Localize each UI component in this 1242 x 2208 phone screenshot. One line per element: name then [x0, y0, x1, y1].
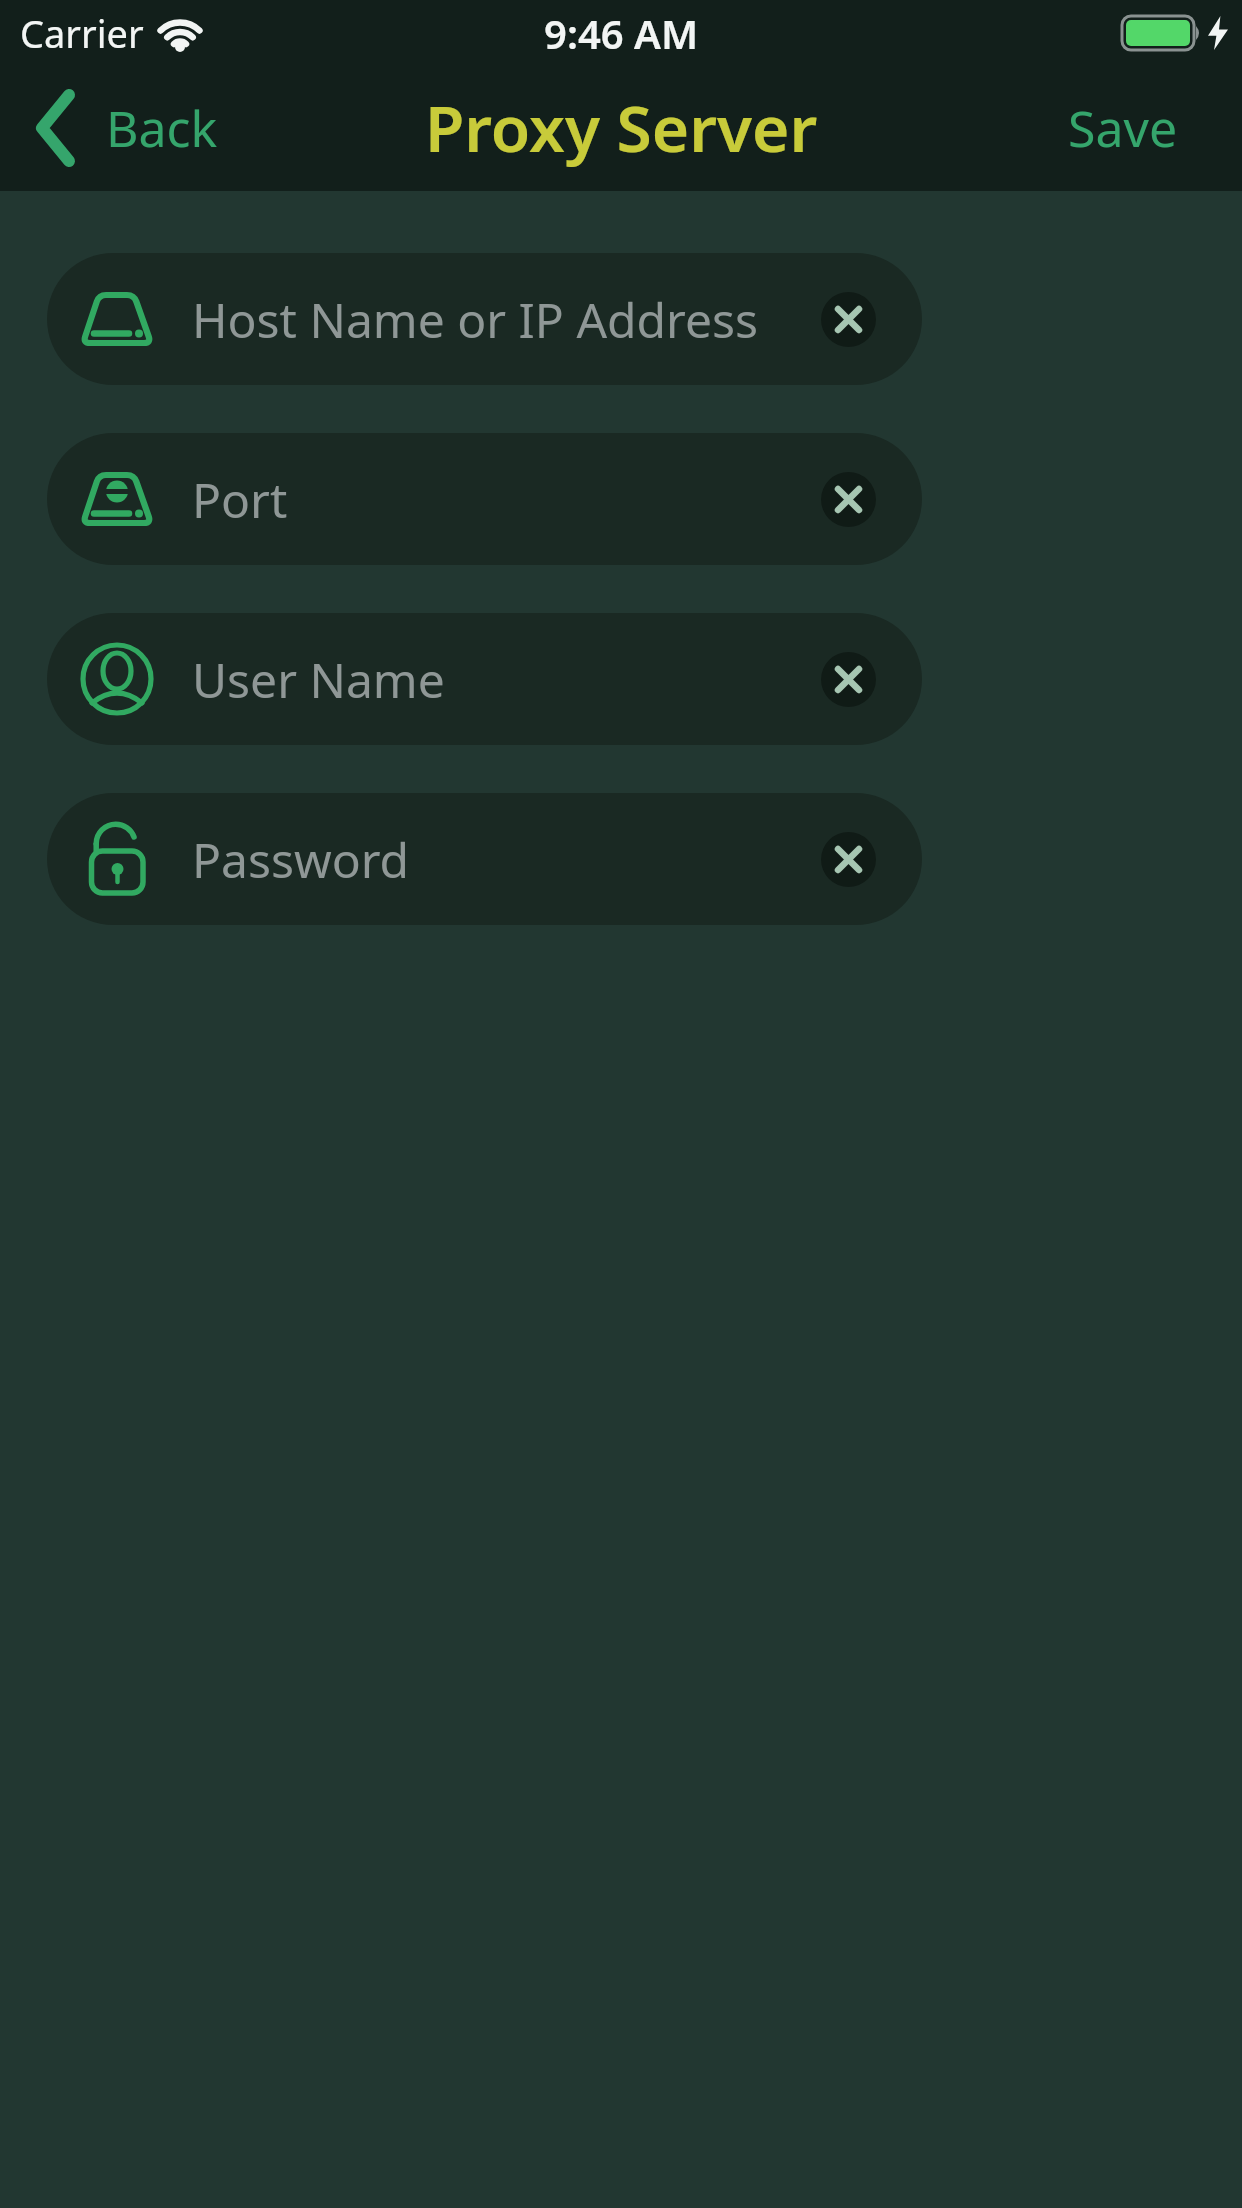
staticText: Save [1068, 94, 1178, 162]
button[interactable]: Save [1068, 94, 1178, 162]
button[interactable]: User Name [47, 613, 922, 745]
staticText: Proxy Server [425, 84, 818, 171]
staticText: Password [192, 827, 410, 892]
staticText: Port [192, 467, 288, 532]
button[interactable]: Password [47, 793, 922, 925]
staticText: User Name [192, 647, 445, 712]
staticText: Back [106, 94, 218, 162]
button[interactable] [821, 472, 876, 527]
staticText: Host Name or IP Address [192, 287, 759, 352]
button[interactable] [821, 292, 876, 347]
button[interactable]: Port [47, 433, 922, 565]
button[interactable]: Host Name or IP Address [47, 253, 922, 385]
button[interactable] [821, 832, 876, 887]
staticText: Carrier [20, 7, 144, 59]
button[interactable] [821, 652, 876, 707]
staticText: 9:46 AM [544, 6, 699, 60]
button[interactable]: Back [36, 92, 218, 164]
